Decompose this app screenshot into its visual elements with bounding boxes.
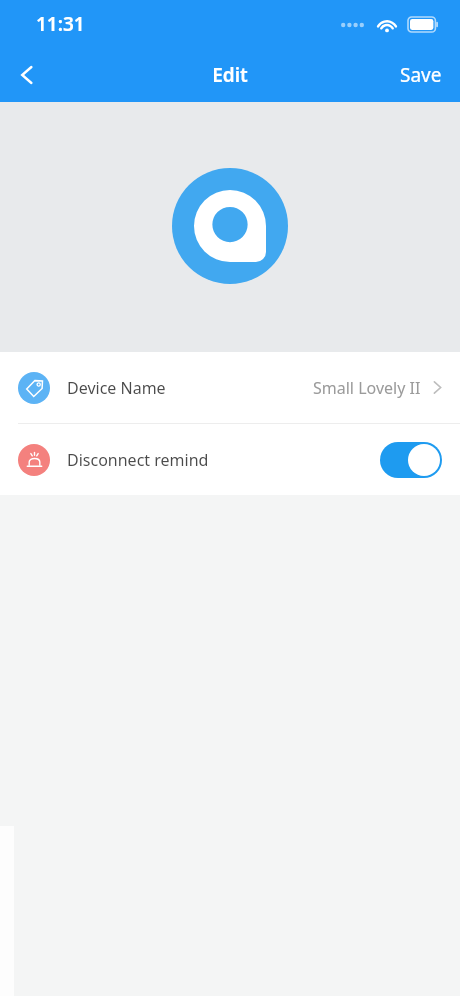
staticText: Disconnect remind	[67, 449, 209, 471]
button[interactable]: Save	[382, 48, 460, 102]
button[interactable]: Disconnect remind toggle	[380, 442, 442, 478]
staticText: Small Lovely II	[313, 377, 421, 399]
button[interactable]: Device Name	[0, 352, 460, 423]
staticText: Save	[400, 62, 442, 88]
button[interactable]: Back	[0, 48, 54, 102]
staticText: 11:31	[36, 11, 85, 37]
button[interactable]: Disconnect remind	[0, 424, 460, 495]
staticText: Edit	[212, 62, 248, 88]
button[interactable]: Device avatar	[172, 168, 288, 284]
staticText: Device Name	[67, 377, 166, 399]
